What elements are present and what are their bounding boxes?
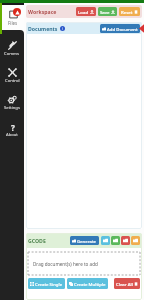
button[interactable]: Comms bbox=[0, 35, 24, 62]
staticText: Create Single bbox=[35, 281, 63, 287]
staticText: Comms bbox=[4, 51, 20, 57]
button[interactable]: Save bbox=[98, 7, 117, 16]
button[interactable]: Load bbox=[76, 7, 96, 16]
button[interactable]: Download bbox=[111, 236, 120, 245]
button[interactable]: Create Multiple bbox=[67, 278, 108, 289]
staticText: Reset bbox=[121, 9, 133, 15]
staticText: About bbox=[6, 132, 18, 138]
button[interactable]: Add Document bbox=[100, 24, 140, 33]
staticText: Workspace bbox=[28, 8, 57, 15]
staticText: Clear All bbox=[116, 281, 133, 287]
staticText: Control bbox=[5, 78, 20, 84]
staticText: GCODE bbox=[28, 237, 46, 244]
button[interactable]: Clear All bbox=[114, 278, 140, 289]
button[interactable]: Edit bbox=[131, 236, 140, 245]
button[interactable]: Control bbox=[0, 62, 24, 89]
button[interactable]: Create Single bbox=[28, 278, 65, 289]
staticText: Settings bbox=[4, 105, 20, 111]
button[interactable]: Settings bbox=[0, 89, 24, 116]
button[interactable]: Delete bbox=[121, 236, 130, 245]
button[interactable]: ? bbox=[0, 116, 24, 143]
staticText: Drag document(s) here to add bbox=[33, 261, 98, 267]
button[interactable]: Info bbox=[60, 26, 65, 31]
button[interactable]: Files bbox=[0, 5, 24, 30]
staticText: Create Multiple bbox=[74, 281, 106, 287]
staticText: Documents bbox=[28, 25, 58, 32]
staticText: Files bbox=[8, 20, 18, 26]
button[interactable]: Preview bbox=[101, 236, 110, 245]
staticText: Save bbox=[100, 9, 110, 15]
staticText: ? bbox=[11, 122, 15, 131]
staticText: Load bbox=[78, 9, 89, 15]
staticText: Add Document bbox=[107, 26, 138, 32]
button[interactable]: Generate bbox=[70, 236, 99, 245]
staticText: Generate bbox=[77, 238, 97, 244]
button[interactable]: Reset bbox=[119, 7, 140, 16]
